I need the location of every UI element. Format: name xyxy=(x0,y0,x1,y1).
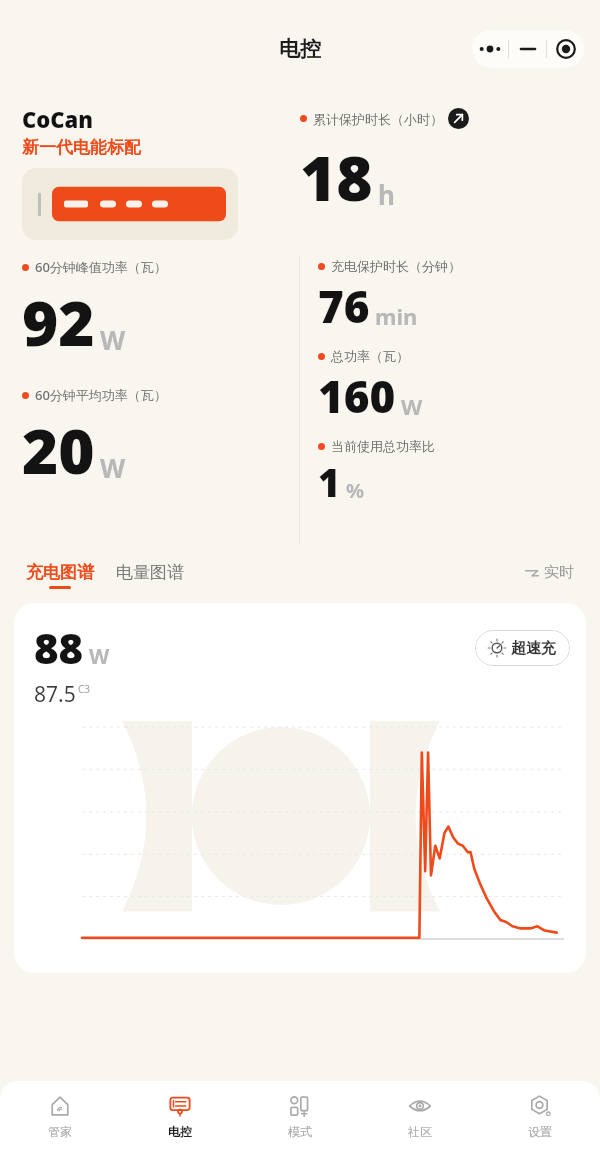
staticText: 160 xyxy=(318,366,396,426)
button[interactable]: 电量图谱 xyxy=(116,562,184,583)
staticText: W xyxy=(100,450,126,485)
staticText: 88 xyxy=(34,619,84,676)
staticText: 新一代电能标配 xyxy=(22,137,141,158)
staticText: 总功率（瓦） xyxy=(331,348,409,364)
staticText: 充电图谱 xyxy=(26,562,94,583)
button[interactable]: 超速充 xyxy=(475,630,570,666)
staticText: 60分钟峰值功率（瓦） xyxy=(35,258,167,276)
staticText: 管家 xyxy=(48,1124,72,1139)
staticText: 电控 xyxy=(279,36,321,62)
staticText: 充电保护时长（分钟） xyxy=(331,258,461,274)
staticText: 87.5 xyxy=(34,680,76,709)
staticText: h xyxy=(378,177,395,212)
staticText: W xyxy=(89,642,110,671)
staticText: C3 xyxy=(78,682,91,696)
staticText: 电控 xyxy=(168,1124,192,1139)
staticText: 92 xyxy=(22,280,95,364)
button[interactable]: 实时 xyxy=(524,563,574,582)
staticText: CoCan xyxy=(22,104,94,134)
staticText: 超速充 xyxy=(511,639,556,658)
staticText: 当前使用总功率比 xyxy=(331,438,435,454)
staticText: 设置 xyxy=(528,1124,552,1139)
staticText: 20 xyxy=(22,408,95,492)
staticText: 模式 xyxy=(288,1124,312,1139)
staticText: 累计保护时长（小时） xyxy=(313,111,443,127)
button[interactable]: 充电图谱 xyxy=(26,562,94,589)
button[interactable] xyxy=(472,30,584,68)
button[interactable]: 社区 xyxy=(360,1093,480,1159)
button[interactable]: 电控 xyxy=(120,1093,240,1159)
staticText: % xyxy=(346,477,365,504)
staticText: 76 xyxy=(318,276,370,336)
button[interactable]: 设置 xyxy=(480,1093,600,1159)
staticText: W xyxy=(401,391,423,421)
staticText: 60分钟平均功率（瓦） xyxy=(35,386,167,404)
button[interactable]: 模式 xyxy=(240,1093,360,1159)
button[interactable]: 详情 xyxy=(448,108,469,129)
staticText: 电量图谱 xyxy=(116,562,184,583)
staticText: 18 xyxy=(300,135,373,219)
staticText: min xyxy=(375,301,418,331)
button[interactable]: 管家 xyxy=(0,1093,120,1159)
staticText: W xyxy=(100,322,126,357)
staticText: 实时 xyxy=(544,563,574,582)
staticText: 社区 xyxy=(408,1124,432,1139)
staticText: 1 xyxy=(318,456,341,508)
